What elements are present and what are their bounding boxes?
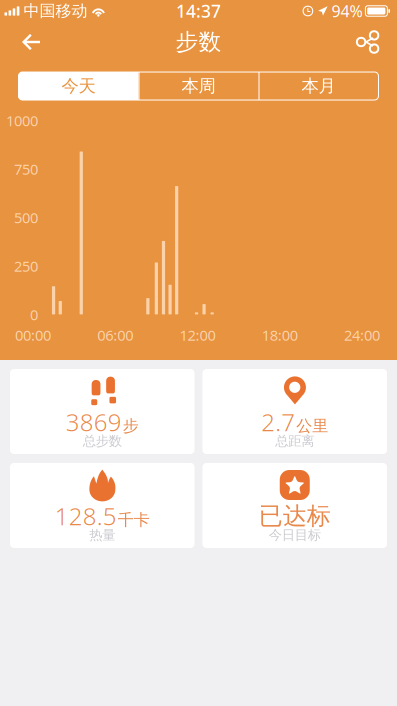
staticText: 总步数 <box>83 433 122 449</box>
staticText: 热量 <box>89 527 115 543</box>
staticText: 今日目标 <box>269 527 321 543</box>
button[interactable]: 已达标 <box>202 463 387 548</box>
staticText: 0 <box>30 305 38 324</box>
button[interactable]: 今天 <box>18 72 138 100</box>
staticText: 1000 <box>6 111 38 130</box>
staticText: 128.5 <box>55 500 117 532</box>
staticText: 千卡 <box>118 510 150 530</box>
staticText: 00:00 <box>15 325 51 345</box>
staticText: 总距离 <box>275 433 314 449</box>
staticText: 18:00 <box>262 325 298 345</box>
staticText: 12:00 <box>179 325 215 345</box>
button[interactable]: 128.5 <box>10 463 194 548</box>
button[interactable]: Back <box>7 22 55 62</box>
button[interactable]: 2.7 <box>202 369 387 454</box>
staticText: 今天 <box>61 75 95 97</box>
staticText: 14:37 <box>176 0 221 22</box>
button[interactable]: Share <box>343 22 394 62</box>
staticText: 3869 <box>66 406 122 438</box>
staticText: 步 <box>123 416 139 436</box>
button[interactable]: 本周 <box>138 72 258 100</box>
staticText: 06:00 <box>97 325 133 345</box>
staticText: 2.7 <box>261 406 295 438</box>
staticText: 750 <box>14 159 38 179</box>
staticText: 250 <box>14 256 38 276</box>
staticText: 已达标 <box>259 501 331 531</box>
staticText: 94% <box>331 0 362 22</box>
staticText: 中国移动 <box>23 1 87 21</box>
staticText: 500 <box>14 208 38 227</box>
staticText: 本月 <box>301 75 335 97</box>
button[interactable]: 3869 <box>10 369 194 454</box>
staticText: 公里 <box>296 416 328 436</box>
button[interactable]: 本月 <box>258 72 378 100</box>
staticText: 步数 <box>175 28 221 56</box>
staticText: 24:00 <box>344 325 380 345</box>
staticText: 本周 <box>181 75 215 97</box>
